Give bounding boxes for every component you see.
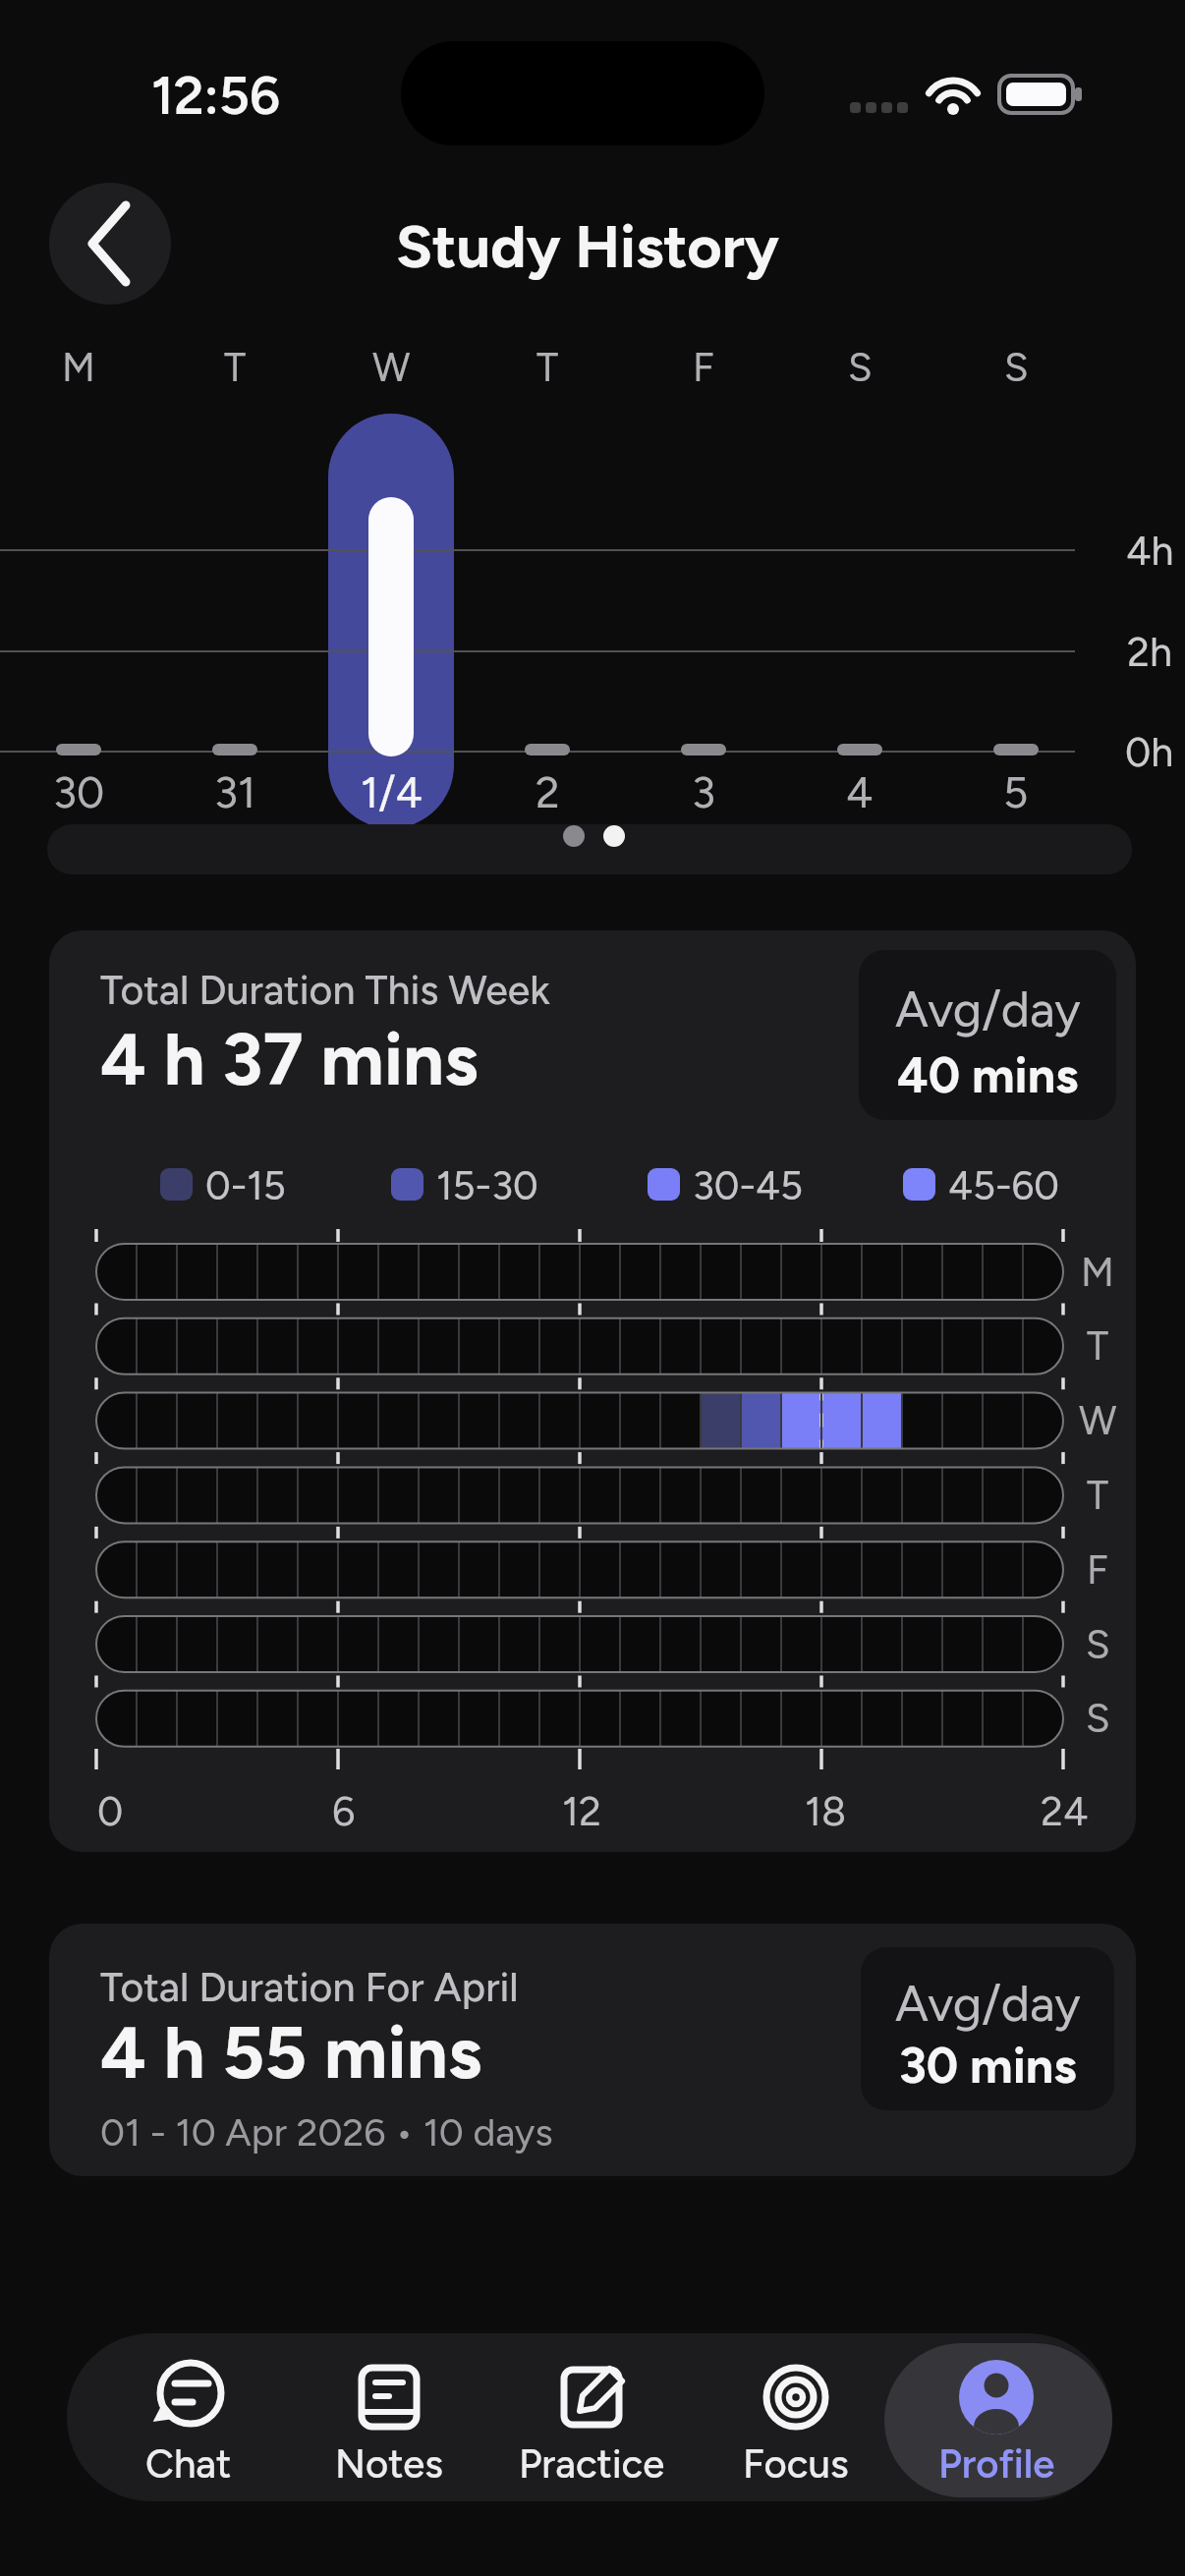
staticText: 4 h 37 mins: [100, 1016, 479, 1103]
staticText: 30 mins: [899, 2036, 1077, 2095]
staticText: F: [693, 344, 714, 391]
staticText: S: [1086, 1695, 1110, 1742]
staticText: Chat: [145, 2440, 232, 2488]
staticText: 5: [1003, 766, 1029, 818]
staticText: Practice: [519, 2440, 665, 2488]
staticText: S: [1004, 344, 1029, 391]
staticText: 2h: [1127, 628, 1172, 676]
staticText: 40 mins: [897, 1045, 1079, 1104]
staticText: Avg/day: [895, 1974, 1081, 2033]
staticText: M: [1081, 1249, 1114, 1296]
staticText: 4 h 55 mins: [100, 2009, 482, 2097]
staticText: 0h: [1125, 728, 1174, 776]
staticText: Total Duration For April: [100, 1963, 519, 2011]
staticText: 6: [332, 1787, 356, 1835]
staticText: 18: [805, 1787, 847, 1835]
staticText: 45-60: [948, 1162, 1059, 1209]
staticText: Notes: [335, 2440, 443, 2488]
staticText: 15-30: [436, 1162, 538, 1209]
staticText: 3: [692, 766, 715, 818]
staticText: 1/4: [361, 766, 423, 818]
staticText: 24: [1041, 1787, 1089, 1835]
staticText: Profile: [938, 2440, 1055, 2488]
staticText: Total Duration This Week: [100, 966, 550, 1014]
staticText: 4h: [1126, 527, 1174, 575]
staticText: Study History: [396, 210, 779, 282]
staticText: F: [1087, 1546, 1108, 1594]
staticText: 30-45: [693, 1162, 803, 1209]
staticText: Focus: [743, 2440, 849, 2488]
staticText: 4: [846, 766, 874, 818]
staticText: T: [536, 344, 559, 391]
staticText: 12: [562, 1787, 601, 1835]
staticText: 0-15: [205, 1162, 286, 1209]
staticText: S: [1086, 1621, 1110, 1668]
staticText: T: [1087, 1322, 1109, 1370]
staticText: Avg/day: [895, 980, 1081, 1038]
staticText: T: [1087, 1472, 1109, 1519]
staticText: 31: [214, 766, 256, 818]
staticText: 01 - 10 Apr 2026 • 10 days: [100, 2109, 553, 2156]
staticText: M: [62, 344, 95, 391]
staticText: 2: [536, 766, 560, 818]
staticText: S: [848, 344, 873, 391]
staticText: W: [1079, 1397, 1117, 1444]
staticText: 0: [97, 1787, 124, 1835]
staticText: 30: [53, 766, 105, 818]
staticText: W: [372, 344, 411, 391]
staticText: 12:56: [151, 64, 280, 128]
staticText: T: [224, 344, 247, 391]
